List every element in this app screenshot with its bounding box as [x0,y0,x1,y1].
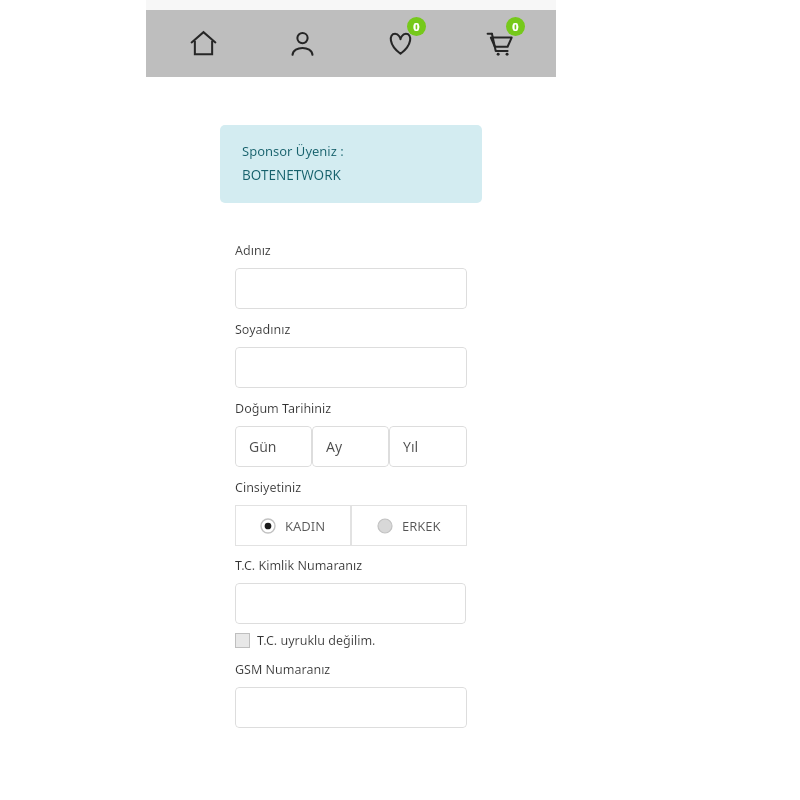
button[interactable]: ERKEK [351,505,467,546]
button[interactable]: T.C. uyruklu değilim. [235,632,376,649]
staticText: ERKEK [402,517,441,535]
button[interactable]: Yıl [389,426,467,467]
staticText: Gün [249,437,277,456]
staticText: GSM Numaranız [235,661,331,678]
button[interactable] [235,583,466,624]
staticText: Yıl [403,437,419,456]
button[interactable]: Ay [312,426,389,467]
button[interactable] [235,268,467,309]
staticText: T.C. uyruklu değilim. [257,632,376,649]
staticText: Ay [326,437,343,456]
staticText: 0 [413,19,420,34]
button[interactable]: Home [162,10,244,77]
staticText: Doğum Tarihiniz [235,400,332,417]
button[interactable]: Cart [458,10,540,77]
button[interactable]: Gün [235,426,312,467]
staticText: T.C. Kimlik Numaranız [235,557,363,574]
staticText: KADIN [285,517,326,535]
staticText: Soyadınız [235,321,291,338]
staticText: Sponsor Üyeniz : [242,142,344,160]
button[interactable]: Sponsor Üyeniz : [220,125,482,203]
staticText: 0 [512,19,519,34]
button[interactable] [235,687,467,728]
button[interactable]: Account [261,10,343,77]
staticText: Cinsiyetiniz [235,479,302,496]
staticText: BOTENETWORK [242,166,341,184]
staticText: Adınız [235,242,271,259]
button[interactable]: KADIN [235,505,351,546]
button[interactable] [235,347,467,388]
button[interactable]: Favorites [359,10,441,77]
